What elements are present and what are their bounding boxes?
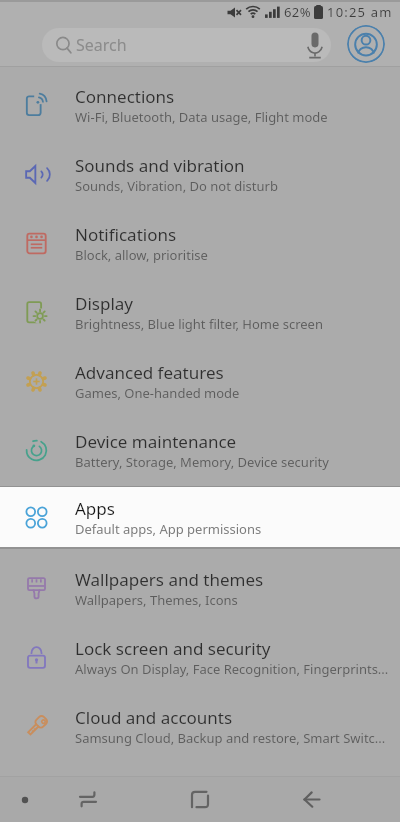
- staticText: Wallpapers, Themes, Icons: [75, 591, 238, 609]
- button[interactable]: [180, 777, 220, 822]
- button[interactable]: Wallpapers and themes: [0, 554, 400, 623]
- staticText: Wallpapers and themes: [75, 568, 264, 591]
- staticText: Advanced features: [75, 361, 224, 384]
- staticText: Apps: [75, 497, 115, 520]
- staticText: Search: [76, 34, 127, 56]
- button[interactable]: Search: [42, 28, 331, 62]
- staticText: Samsung Cloud, Backup and restore, Smart…: [75, 729, 386, 747]
- button[interactable]: Advanced features: [0, 347, 400, 416]
- button[interactable]: [292, 777, 332, 822]
- staticText: Device maintenance: [75, 430, 237, 453]
- staticText: Battery, Storage, Memory, Device securit…: [75, 453, 329, 471]
- button[interactable]: Connections: [0, 71, 400, 140]
- staticText: Default apps, App permissions: [75, 520, 262, 538]
- button[interactable]: [68, 777, 108, 822]
- staticText: Always On Display, Face Recognition, Fin…: [75, 660, 389, 678]
- staticText: Block, allow, prioritise: [75, 246, 208, 264]
- button[interactable]: Lock screen and security: [0, 623, 400, 692]
- staticText: 62%: [284, 3, 311, 21]
- staticText: Notifications: [75, 223, 177, 246]
- button[interactable]: Display: [0, 278, 400, 347]
- button[interactable]: [15, 790, 35, 810]
- staticText: Lock screen and security: [75, 637, 271, 660]
- staticText: Sounds, Vibration, Do not disturb: [75, 177, 278, 195]
- staticText: Sounds and vibration: [75, 154, 245, 177]
- button[interactable]: Apps: [0, 487, 400, 547]
- button[interactable]: [347, 25, 385, 63]
- staticText: Connections: [75, 85, 175, 108]
- staticText: Games, One-handed mode: [75, 384, 240, 402]
- button[interactable]: Sounds and vibration: [0, 140, 400, 209]
- button[interactable]: Cloud and accounts: [0, 692, 400, 761]
- button[interactable]: Device maintenance: [0, 416, 400, 485]
- staticText: Cloud and accounts: [75, 706, 233, 729]
- staticText: 10:25 am: [327, 3, 393, 21]
- staticText: Brightness, Blue light filter, Home scre…: [75, 315, 323, 333]
- staticText: Wi-Fi, Bluetooth, Data usage, Flight mod…: [75, 108, 328, 126]
- staticText: Display: [75, 292, 133, 315]
- button[interactable]: Notifications: [0, 209, 400, 278]
